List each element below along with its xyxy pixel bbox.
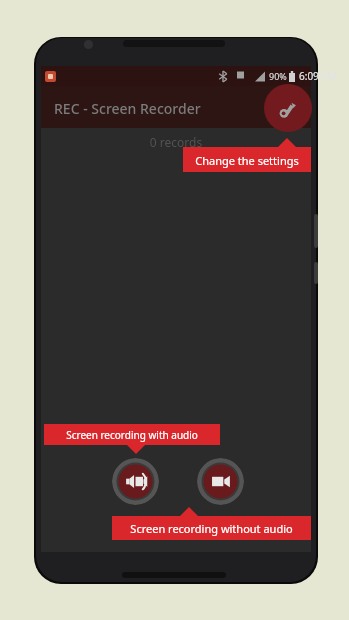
button[interactable]: Screen recording with audio	[112, 458, 159, 505]
button[interactable]: REC - Screen Recorder	[41, 86, 311, 128]
staticText: 6:09 PM	[299, 69, 337, 83]
staticText: 90%	[269, 70, 287, 82]
button[interactable]: Screen recording without audio	[197, 458, 244, 505]
button[interactable]: Screen recording with audio	[44, 424, 220, 445]
button[interactable]: Change the settings	[183, 147, 311, 172]
staticText: 0 records	[41, 134, 311, 152]
button[interactable]: Change the settings	[264, 84, 312, 132]
staticText: Change the settings	[183, 153, 311, 178]
staticText: Screen recording with audio	[44, 428, 220, 449]
button[interactable]: Screen recording without audio	[112, 516, 311, 540]
staticText: REC - Screen Recorder	[54, 99, 201, 118]
staticText: Screen recording without audio	[112, 521, 311, 545]
